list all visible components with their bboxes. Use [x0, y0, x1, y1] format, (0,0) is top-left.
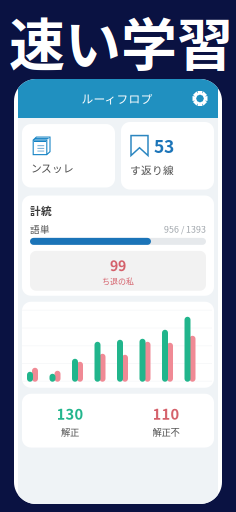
staticText: 解正不: [152, 425, 179, 438]
staticText: 計統: [30, 202, 52, 218]
staticText: 53: [154, 133, 174, 158]
staticText: 語単: [30, 222, 50, 236]
button[interactable]: Settings: [190, 88, 210, 108]
staticText: 解正: [61, 425, 79, 438]
staticText: す返り線: [130, 162, 174, 177]
staticText: 110: [152, 403, 179, 424]
staticText: ンスッレ: [31, 160, 74, 175]
staticText: 速い学習: [9, 0, 233, 81]
staticText: 99: [110, 255, 126, 275]
staticText: ルーィフロプ: [81, 90, 152, 107]
staticText: 956 / 1393: [164, 223, 206, 235]
staticText: 130: [56, 403, 83, 424]
staticText: ち退の私: [102, 275, 134, 287]
